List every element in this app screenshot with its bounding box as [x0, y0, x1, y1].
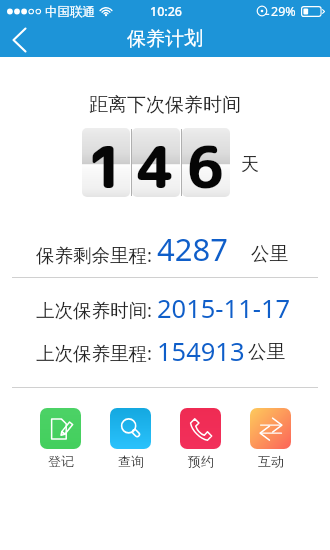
staticText: 天 [241, 153, 259, 176]
staticText: 上次保养时间: [36, 297, 152, 322]
staticText: 4287 [157, 228, 228, 270]
staticText: 1 [87, 127, 125, 196]
staticText: 距离下次保养时间 [0, 93, 330, 117]
staticText: 6 [187, 127, 225, 196]
staticText: 上次保养里程: [36, 340, 152, 365]
staticText: 29% [271, 3, 296, 20]
staticText: 互动 [258, 453, 284, 469]
staticText: 4 [137, 127, 175, 196]
button[interactable]: Back [0, 22, 39, 57]
staticText: 登记 [48, 453, 74, 469]
staticText: 查询 [118, 453, 144, 469]
staticText: 预约 [188, 453, 214, 469]
staticText: 10:26 [150, 3, 183, 20]
staticText: 公里 [251, 242, 288, 265]
staticText: 中国联通 [45, 4, 95, 20]
button[interactable]: 登记 [40, 408, 81, 469]
staticText: 154913 [157, 334, 245, 369]
staticText: 公里 [248, 340, 285, 363]
button[interactable]: 互动 [250, 408, 291, 469]
button[interactable]: 查询 [110, 408, 151, 469]
button[interactable]: 预约 [180, 408, 221, 469]
staticText: 保养计划 [127, 27, 203, 51]
staticText: 2015-11-17 [157, 291, 291, 326]
staticText: 保养剩余里程: [36, 242, 152, 267]
